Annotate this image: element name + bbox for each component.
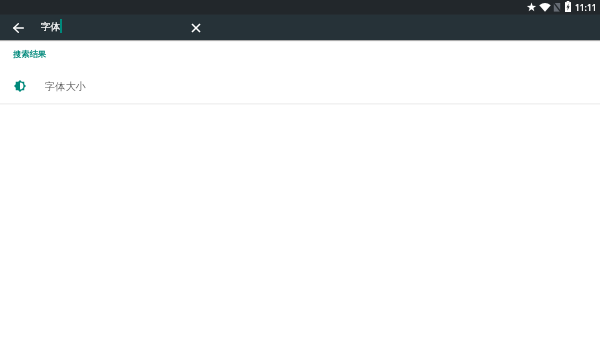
staticText: 11:11: [575, 2, 597, 13]
button[interactable]: Clear search query: [183, 15, 208, 40]
staticText: 搜索结果: [13, 49, 46, 59]
button[interactable]: Navigate up: [6, 15, 31, 40]
staticText: 字体大小: [45, 80, 86, 93]
staticText: 字体: [41, 21, 61, 33]
button[interactable]: 字体: [38, 15, 183, 40]
button[interactable]: 字体大小: [0, 71, 600, 101]
